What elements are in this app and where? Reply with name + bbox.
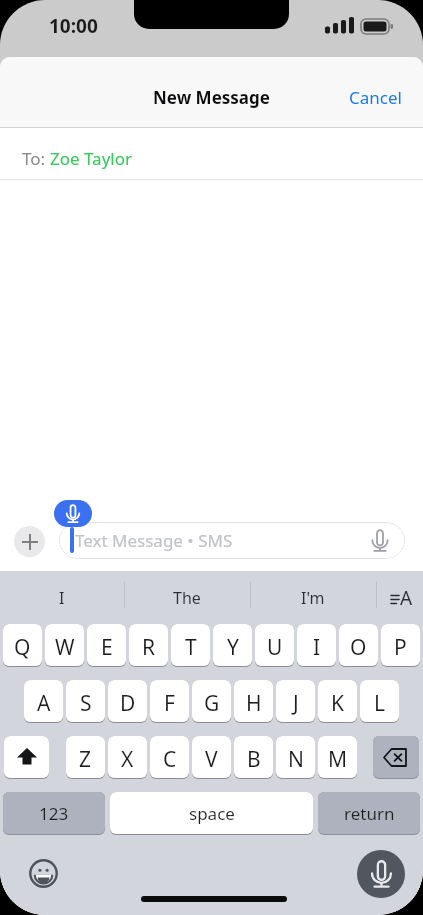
button[interactable]: A bbox=[24, 680, 63, 723]
staticText: B bbox=[247, 745, 261, 774]
staticText: P bbox=[394, 633, 407, 662]
staticText: space bbox=[189, 802, 235, 825]
button[interactable]: P bbox=[381, 624, 420, 667]
staticText: D bbox=[120, 689, 136, 718]
button[interactable] bbox=[357, 850, 405, 898]
button[interactable]: I'm bbox=[258, 571, 368, 624]
staticText: F bbox=[164, 689, 175, 718]
button[interactable]: M bbox=[318, 736, 357, 779]
staticText: A bbox=[37, 689, 51, 718]
button[interactable]: Z bbox=[66, 736, 105, 779]
staticText: K bbox=[331, 689, 344, 718]
button[interactable]: Y bbox=[213, 624, 252, 667]
staticText: Zoe Taylor bbox=[50, 147, 133, 170]
button[interactable]: A bbox=[380, 571, 423, 624]
button[interactable]: G bbox=[192, 680, 231, 723]
staticText: W bbox=[55, 633, 75, 662]
staticText: Text Message • SMS bbox=[75, 529, 233, 552]
button[interactable]: W bbox=[45, 624, 84, 667]
button[interactable]: L bbox=[360, 680, 399, 723]
staticText: E bbox=[101, 633, 113, 662]
staticText: Q bbox=[14, 633, 31, 662]
button[interactable]: I bbox=[297, 624, 336, 667]
button[interactable]: U bbox=[255, 624, 294, 667]
staticText: Y bbox=[227, 633, 239, 662]
staticText: R bbox=[142, 633, 156, 662]
staticText: N bbox=[288, 745, 304, 774]
staticText: New Message bbox=[153, 86, 270, 109]
button[interactable]: I bbox=[7, 571, 117, 624]
staticText: I bbox=[313, 633, 321, 662]
button[interactable]: D bbox=[108, 680, 147, 723]
button[interactable]: Text Message • SMS bbox=[59, 522, 405, 559]
button[interactable] bbox=[373, 736, 419, 779]
staticText: 123 bbox=[39, 802, 69, 825]
button[interactable]: J bbox=[276, 680, 315, 723]
staticText: 10:00 bbox=[49, 13, 98, 39]
button[interactable]: return bbox=[318, 792, 420, 835]
staticText: I'm bbox=[301, 587, 325, 609]
button[interactable]: space bbox=[110, 792, 313, 835]
staticText: return bbox=[344, 802, 395, 825]
button[interactable]: S bbox=[66, 680, 105, 723]
button[interactable]: Q bbox=[3, 624, 42, 667]
button[interactable]: H bbox=[234, 680, 273, 723]
button[interactable]: The bbox=[132, 571, 242, 624]
button[interactable]: X bbox=[108, 736, 147, 779]
button[interactable]: E bbox=[87, 624, 126, 667]
button[interactable] bbox=[54, 500, 92, 527]
staticText: Z bbox=[79, 745, 92, 774]
button[interactable]: B bbox=[234, 736, 273, 779]
button[interactable]: V bbox=[192, 736, 231, 779]
staticText: The bbox=[173, 587, 201, 609]
staticText: A bbox=[400, 585, 413, 611]
staticText: G bbox=[204, 689, 220, 718]
button[interactable]: R bbox=[129, 624, 168, 667]
staticText: To: bbox=[22, 147, 50, 170]
button[interactable]: To: bbox=[0, 128, 423, 179]
staticText: L bbox=[374, 689, 386, 718]
staticText: M bbox=[328, 745, 348, 774]
staticText: O bbox=[350, 633, 367, 662]
button[interactable] bbox=[14, 526, 45, 557]
button[interactable]: N bbox=[276, 736, 315, 779]
button[interactable]: C bbox=[150, 736, 189, 779]
button[interactable]: K bbox=[318, 680, 357, 723]
staticText: U bbox=[267, 633, 283, 662]
button[interactable]: T bbox=[171, 624, 210, 667]
button[interactable] bbox=[4, 736, 49, 779]
button[interactable]: 123 bbox=[3, 792, 105, 835]
staticText: X bbox=[121, 745, 134, 774]
staticText: Cancel bbox=[349, 86, 402, 109]
button[interactable]: Cancel bbox=[349, 57, 423, 127]
staticText: J bbox=[293, 689, 299, 718]
staticText: T bbox=[185, 633, 197, 662]
button[interactable] bbox=[28, 858, 59, 889]
button[interactable]: F bbox=[150, 680, 189, 723]
staticText: S bbox=[80, 689, 92, 718]
staticText: H bbox=[246, 689, 262, 718]
staticText: I bbox=[59, 587, 65, 609]
staticText: V bbox=[205, 745, 218, 774]
button[interactable]: O bbox=[339, 624, 378, 667]
staticText: C bbox=[163, 745, 177, 774]
